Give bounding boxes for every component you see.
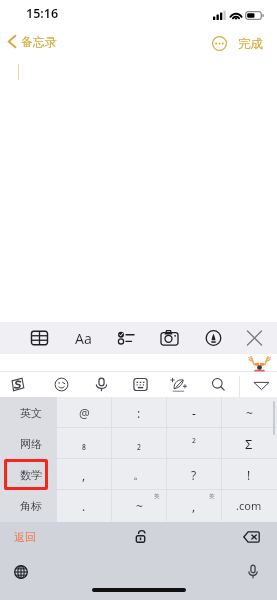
button[interactable]: ? xyxy=(167,459,221,490)
staticText: 英 xyxy=(209,493,215,500)
button[interactable]: Insert table xyxy=(26,324,52,352)
button[interactable]: 角标 xyxy=(0,490,57,521)
button[interactable]: Close keyboard xyxy=(241,324,267,352)
button[interactable]: Checklist xyxy=(113,324,139,352)
button[interactable]: Search xyxy=(206,372,230,397)
button[interactable]: ! xyxy=(222,459,276,490)
button[interactable]: Markup xyxy=(200,324,226,352)
staticText: 网络 xyxy=(20,437,42,451)
staticText: , xyxy=(82,467,86,483)
staticText: 角标 xyxy=(20,499,42,513)
staticText: 完成 xyxy=(238,36,263,52)
staticText: 。 xyxy=(133,467,145,482)
staticText: @ xyxy=(79,405,90,421)
button[interactable]: , xyxy=(57,459,111,490)
staticText: , xyxy=(192,498,196,514)
staticText: 返回 xyxy=(14,530,36,544)
button[interactable]: Switch language xyxy=(9,560,33,584)
staticText: 英 xyxy=(154,493,160,500)
button[interactable]: Lock keyboard xyxy=(129,525,151,547)
button[interactable]: Handwriting xyxy=(166,372,190,397)
staticText: ? xyxy=(191,467,197,483)
button[interactable]: ² xyxy=(167,428,221,459)
button[interactable]: More options xyxy=(210,34,228,52)
button[interactable]: .com xyxy=(222,490,276,521)
staticText: .com xyxy=(236,498,262,513)
staticText: ² xyxy=(192,436,196,451)
staticText: 15:16 xyxy=(26,5,59,22)
button[interactable]: @ xyxy=(57,397,111,428)
button[interactable]: Camera xyxy=(156,324,182,352)
staticText: 数学 xyxy=(20,468,42,482)
staticText: ! xyxy=(247,467,251,483)
button[interactable]: Aa xyxy=(70,324,96,352)
staticText: ₂ xyxy=(137,436,141,451)
button[interactable]: 英文 xyxy=(0,397,57,428)
button[interactable]: : xyxy=(112,397,166,428)
staticText: . xyxy=(82,498,86,514)
button[interactable]: 。 xyxy=(112,459,166,490)
button[interactable]: Backspace xyxy=(239,525,263,549)
button[interactable]: Voice input xyxy=(89,372,113,397)
staticText: Aa xyxy=(75,329,92,348)
staticText: : xyxy=(137,405,141,421)
staticText: 备忘录 xyxy=(21,34,57,49)
staticText: Σ xyxy=(245,435,253,453)
button[interactable]: , xyxy=(167,490,221,521)
button[interactable]: Collapse keyboard xyxy=(249,372,273,397)
staticText: ~ xyxy=(136,498,143,514)
staticText: 英文 xyxy=(20,406,42,420)
button[interactable]: 返回 xyxy=(10,526,40,548)
button[interactable]: ₈ xyxy=(57,428,111,459)
button[interactable]: ₂ xyxy=(112,428,166,459)
button[interactable]: Sogou input settings xyxy=(5,372,29,397)
button[interactable]: Dictation xyxy=(241,559,265,583)
button[interactable]: Σ xyxy=(222,428,276,459)
button[interactable]: 网络 xyxy=(0,428,57,459)
staticText: - xyxy=(192,405,196,421)
staticText: ₈ xyxy=(82,436,86,451)
button[interactable]: Emoji xyxy=(49,372,73,397)
button[interactable]: 完成 xyxy=(236,33,265,55)
button[interactable]: ~ xyxy=(112,490,166,521)
button[interactable]: 备忘录 xyxy=(4,31,61,52)
button[interactable]: . xyxy=(57,490,111,521)
button[interactable]: - xyxy=(167,397,221,428)
button[interactable]: 数学 xyxy=(0,459,57,490)
button[interactable]: Keyboard layouts xyxy=(128,372,152,397)
button[interactable]: ~ xyxy=(222,397,276,428)
staticText: ~ xyxy=(246,405,253,421)
